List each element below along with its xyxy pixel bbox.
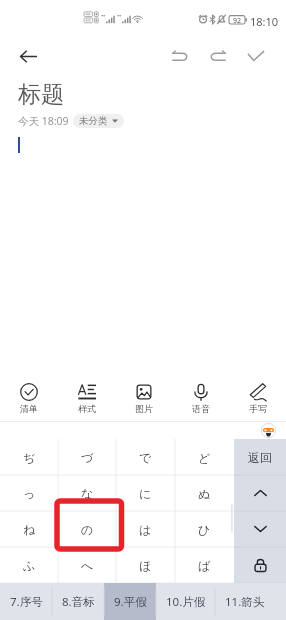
staticText: な: [81, 486, 94, 501]
button[interactable]: ふ: [0, 547, 58, 583]
staticText: 语音: [192, 403, 210, 414]
staticText: 未分类: [79, 115, 108, 127]
staticText: 今天 18:09: [18, 114, 69, 128]
button[interactable]: Redo: [200, 38, 236, 74]
button[interactable]: ひ: [175, 511, 234, 547]
staticText: 18:10: [250, 14, 279, 29]
staticText: ね: [23, 522, 36, 537]
staticText: 8.音标: [62, 594, 95, 610]
button[interactable]: っ: [0, 475, 58, 511]
staticText: 手写: [249, 403, 267, 414]
button[interactable]: な: [58, 475, 116, 511]
button[interactable]: 图片: [115, 377, 172, 421]
button[interactable]: 9.平假: [104, 583, 156, 620]
staticText: ぢ: [23, 450, 36, 465]
staticText: 标题: [18, 80, 64, 109]
button[interactable]: ば: [175, 547, 234, 583]
button[interactable]: Undo: [162, 38, 198, 74]
staticText: っ: [23, 486, 36, 501]
staticText: づ: [81, 450, 94, 465]
button[interactable]: ど: [175, 439, 234, 475]
staticText: ふ: [23, 558, 36, 573]
staticText: 样式: [78, 403, 96, 414]
button[interactable]: Emoji: [261, 423, 276, 438]
staticText: ぬ: [198, 486, 211, 501]
staticText: ば: [198, 558, 211, 573]
button[interactable]: 7.序号: [0, 583, 52, 620]
staticText: ひ: [198, 522, 211, 537]
staticText: ほ: [139, 558, 152, 573]
staticText: 9.平假: [114, 594, 147, 610]
staticText: 图片: [135, 403, 153, 414]
staticText: に: [139, 486, 152, 501]
button[interactable]: 语音: [172, 377, 229, 421]
button[interactable]: ぢ: [0, 439, 58, 475]
staticText: で: [139, 450, 152, 465]
staticText: 返回: [248, 450, 272, 465]
staticText: 7.序号: [10, 594, 43, 610]
staticText: 11.箭头: [225, 594, 265, 610]
button[interactable]: Move up: [234, 475, 286, 511]
staticText: 清单: [20, 403, 38, 414]
button[interactable]: 未分类: [73, 114, 124, 128]
button[interactable]: 手写: [229, 377, 286, 421]
button[interactable]: づ: [58, 439, 116, 475]
staticText: の: [81, 522, 94, 537]
button[interactable]: 11.箭头: [215, 583, 274, 620]
button[interactable]: に: [116, 475, 175, 511]
button[interactable]: 8.音标: [52, 583, 104, 620]
button[interactable]: 10.片假: [156, 583, 215, 620]
staticText: は: [139, 522, 152, 537]
button[interactable]: Back: [10, 38, 46, 74]
button[interactable]: で: [116, 439, 175, 475]
staticText: 10.片假: [166, 594, 206, 610]
staticText: ど: [198, 450, 211, 465]
button[interactable]: ほ: [116, 547, 175, 583]
button[interactable]: ぬ: [175, 475, 234, 511]
button[interactable]: ね: [0, 511, 58, 547]
button[interactable]: Lock: [234, 547, 286, 583]
button[interactable]: Done: [238, 38, 274, 74]
button[interactable]: 清单: [0, 377, 58, 421]
button[interactable]: は: [116, 511, 175, 547]
staticText: 92: [233, 16, 242, 24]
button[interactable]: Move down: [234, 511, 286, 547]
button[interactable]: の: [58, 511, 116, 547]
button[interactable]: へ: [58, 547, 116, 583]
button[interactable]: 返回: [234, 439, 286, 475]
staticText: へ: [81, 558, 94, 573]
button[interactable]: 样式: [58, 377, 115, 421]
